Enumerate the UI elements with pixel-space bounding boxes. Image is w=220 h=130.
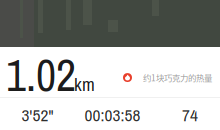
staticText: 3'52" <box>21 103 53 127</box>
staticText: 00:03:58 <box>84 103 140 127</box>
button[interactable]: 3'52" <box>0 103 75 127</box>
staticText: 1.02 <box>6 45 76 105</box>
staticText: 74 <box>182 103 198 127</box>
button[interactable]: 约1块巧克力的热量 <box>123 71 220 102</box>
button[interactable]: 00:03:58 <box>75 103 150 127</box>
staticText: km <box>74 72 95 97</box>
button[interactable]: 74 <box>155 103 220 127</box>
staticText: 约1块巧克力的热量 <box>143 71 212 84</box>
